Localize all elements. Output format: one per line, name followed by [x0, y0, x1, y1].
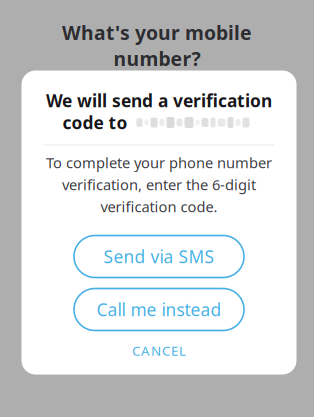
- staticText: To complete your phone number: [46, 152, 272, 172]
- staticText: What's your mobile: [62, 19, 252, 46]
- button[interactable]: Send via SMS: [74, 235, 244, 277]
- staticText: code to: [62, 111, 127, 134]
- button[interactable]: C A N C E L: [59, 330, 259, 370]
- staticText: verification code.: [100, 196, 217, 216]
- staticText: C A N C E L: [132, 341, 186, 360]
- staticText: Send via SMS: [103, 245, 214, 268]
- button[interactable]: Call me instead: [74, 288, 244, 330]
- staticText: number?: [113, 45, 200, 72]
- staticText: We will send a verification: [46, 89, 272, 112]
- staticText: Call me instead: [96, 298, 221, 321]
- staticText: verification, enter the 6-digit: [62, 174, 256, 194]
